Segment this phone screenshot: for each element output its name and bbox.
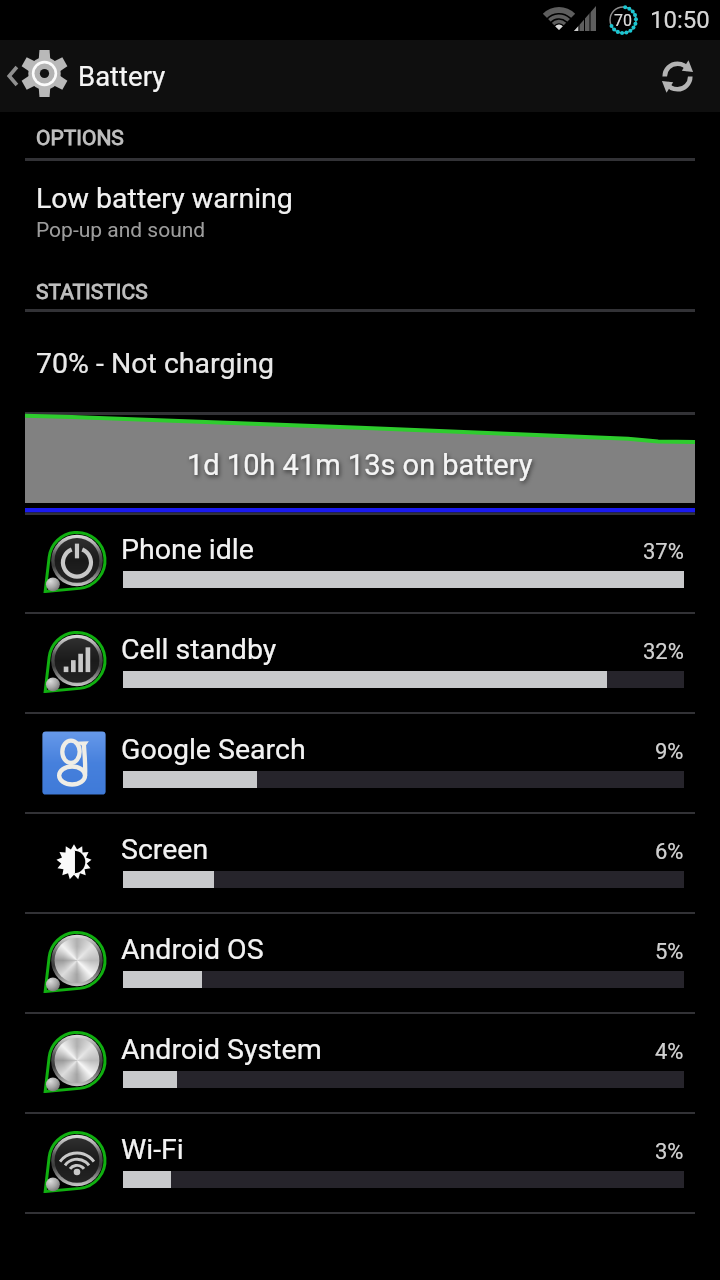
- staticText: Android OS: [121, 933, 264, 966]
- button[interactable]: Refresh: [641, 40, 713, 112]
- staticText: Google Search: [121, 733, 306, 766]
- button[interactable]: Wi-Fi: [0, 1114, 720, 1212]
- button[interactable]: Low battery warning: [0, 172, 720, 254]
- staticText: 1d 10h 41m 13s on battery: [187, 448, 533, 482]
- staticText: 5%: [655, 939, 684, 965]
- button[interactable]: Phone idle: [0, 514, 720, 612]
- button[interactable]: Google Search: [0, 714, 720, 812]
- button[interactable]: Android OS: [0, 914, 720, 1012]
- staticText: Android System: [121, 1033, 322, 1066]
- staticText: 70% - Not charging: [36, 347, 275, 380]
- staticText: 70: [614, 11, 632, 30]
- staticText: Cell standby: [121, 633, 277, 666]
- staticText: Battery: [78, 60, 166, 92]
- staticText: OPTIONS: [36, 126, 124, 151]
- staticText: Wi-Fi: [121, 1133, 184, 1166]
- staticText: 10:50: [650, 6, 710, 34]
- staticText: 37%: [643, 539, 684, 565]
- staticText: 32%: [643, 639, 684, 665]
- staticText: 6%: [655, 839, 684, 865]
- button[interactable]: Android System: [0, 1014, 720, 1112]
- staticText: 4%: [655, 1039, 684, 1065]
- staticText: Low battery warning: [36, 182, 293, 215]
- staticText: 9%: [655, 739, 684, 765]
- button[interactable]: Navigate up: [0, 40, 720, 112]
- staticText: Phone idle: [121, 533, 254, 566]
- staticText: STATISTICS: [36, 280, 148, 305]
- staticText: Pop-up and sound: [36, 218, 206, 243]
- staticText: 3%: [655, 1139, 684, 1165]
- staticText: Screen: [121, 833, 209, 866]
- button[interactable]: Screen: [0, 814, 720, 912]
- button[interactable]: Cell standby: [0, 614, 720, 712]
